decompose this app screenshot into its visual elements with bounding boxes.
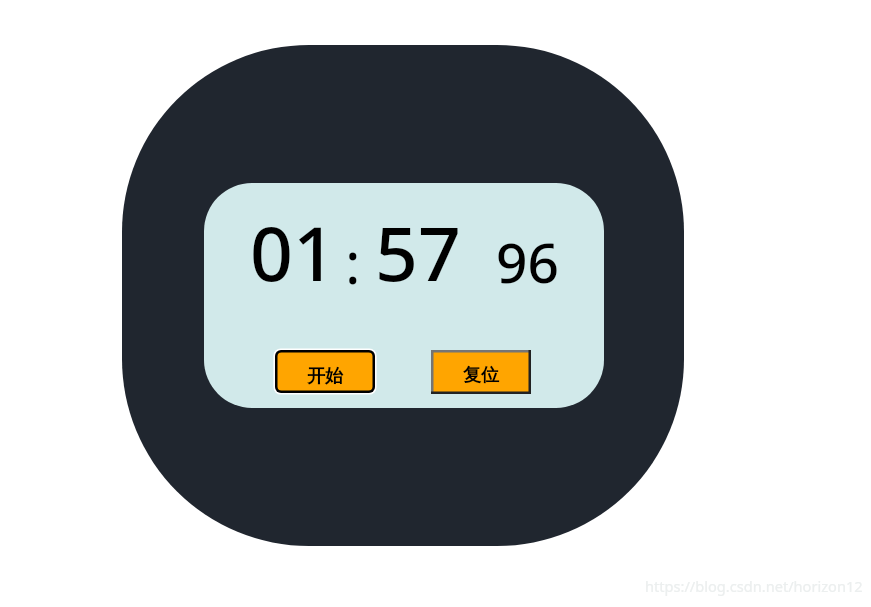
button[interactable]: 开始 [275,350,375,393]
staticText: : [345,222,361,301]
staticText: 57 [375,201,461,303]
staticText: 01 [250,201,336,303]
staticText: 开始 [307,365,343,388]
staticText: 复位 [463,364,499,387]
staticText: https://blog.csdn.net/horizon12 [645,576,863,596]
staticText: 96 [496,224,559,299]
button[interactable]: 复位 [431,350,531,394]
